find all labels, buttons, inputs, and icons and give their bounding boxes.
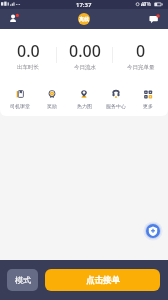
button[interactable]: 点击接单 [45, 269, 160, 291]
staticText: 更多 [143, 103, 153, 109]
staticText: 今日流水 [74, 64, 96, 71]
button[interactable]: Safety [143, 221, 163, 241]
button[interactable]: 离线 [78, 13, 90, 25]
button[interactable]: Profile [8, 13, 20, 25]
button[interactable]: 0.0 [0, 31, 56, 79]
staticText: 0 [136, 40, 146, 62]
staticText: 47% [141, 1, 151, 8]
staticText: 奖励 [47, 103, 57, 109]
staticText: 离线 [79, 16, 89, 22]
button[interactable]: 服务中心 [100, 83, 132, 116]
button[interactable]: 模式 [7, 269, 38, 291]
staticText: 司机课堂 [10, 103, 30, 109]
button[interactable]: 0 [113, 31, 168, 79]
staticText: 17:37 [76, 1, 92, 9]
button[interactable]: 热力图 [68, 83, 100, 116]
staticText: 模式 [15, 275, 31, 285]
button[interactable]: 0.00 [57, 31, 112, 79]
button[interactable]: Messages [148, 13, 160, 25]
button[interactable]: 更多 [132, 83, 164, 116]
button[interactable]: 司机课堂 [4, 83, 36, 116]
staticText: 今日完单量 [127, 64, 155, 71]
staticText: 出车时长 [17, 64, 39, 71]
button[interactable]: 奖励 [36, 83, 68, 116]
staticText: 点击接单 [86, 275, 120, 286]
staticText: 0.0 [17, 40, 40, 62]
staticText: 服务中心 [106, 103, 126, 109]
staticText: 热力图 [77, 103, 92, 109]
staticText: 0.00 [69, 40, 101, 62]
